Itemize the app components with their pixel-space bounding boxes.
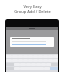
button[interactable]	[10, 37, 54, 47]
button[interactable]	[6, 27, 58, 30]
staticText: Very Easy	[23, 4, 42, 9]
staticText: Group Add / Delete	[14, 9, 51, 14]
